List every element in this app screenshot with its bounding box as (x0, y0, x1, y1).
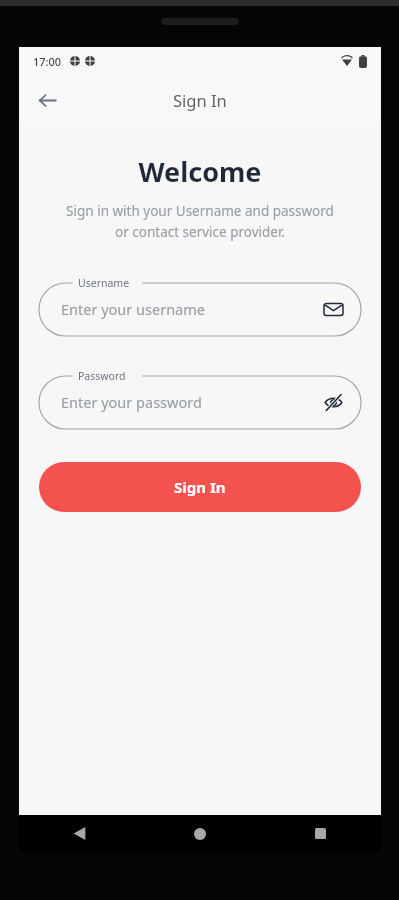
staticText: Enter your password (61, 392, 202, 412)
staticText: Username (78, 276, 130, 290)
staticText: Sign in with your Username and password … (43, 202, 357, 241)
button[interactable]: Back (19, 815, 139, 852)
button[interactable]: Username (39, 274, 361, 336)
button[interactable]: Home (139, 815, 260, 852)
staticText: Sign In (174, 477, 226, 497)
staticText: Sign In (173, 89, 227, 111)
button[interactable]: Email (317, 293, 349, 325)
button[interactable]: Show password (317, 386, 349, 418)
staticText: 17:00 (33, 54, 62, 69)
staticText: Enter your username (61, 299, 205, 319)
button[interactable]: Sign In (39, 462, 361, 512)
button[interactable]: Password (39, 367, 361, 429)
staticText: Welcome (19, 153, 381, 190)
staticText: Password (78, 369, 126, 383)
button[interactable]: Recent apps (260, 815, 381, 852)
button[interactable]: Back (27, 80, 67, 120)
